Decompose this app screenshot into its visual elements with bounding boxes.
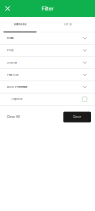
staticText: Vegetarian	[11, 98, 22, 101]
staticText: Filter	[42, 5, 54, 12]
staticText: Discount	[7, 61, 17, 64]
staticText: Brand	[7, 37, 14, 40]
button[interactable]: Brand	[0, 32, 95, 45]
staticText: Done	[73, 115, 81, 119]
button[interactable]: Vegetarian	[0, 93, 95, 106]
staticText: Pack Size	[7, 73, 18, 76]
staticText: Price	[7, 49, 13, 52]
button[interactable]: Price	[0, 45, 95, 57]
button[interactable]: Pack Size	[0, 69, 95, 81]
button[interactable]: Food Preferences	[0, 81, 95, 93]
button[interactable]: Refine by	[0, 17, 40, 32]
button[interactable]: Done	[63, 112, 91, 122]
staticText: Sort by	[63, 23, 71, 26]
staticText: Refine by	[14, 23, 26, 26]
button[interactable]: Clear All	[0, 111, 26, 123]
staticText: Food Preferences	[7, 85, 27, 89]
button[interactable]: Close	[0, 1, 14, 16]
staticText: Clear All	[7, 115, 20, 119]
button[interactable]: Discount	[0, 57, 95, 69]
button[interactable]: Sort by	[40, 17, 95, 32]
